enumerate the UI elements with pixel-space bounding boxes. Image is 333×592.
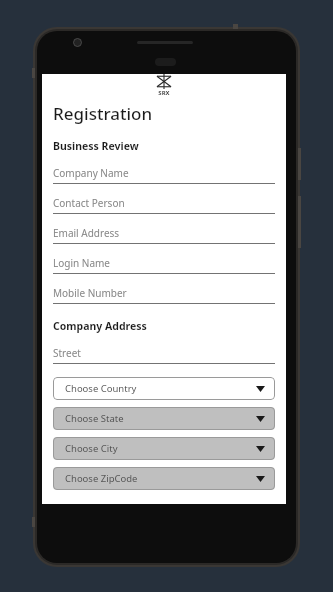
- staticText: Contact Person: [53, 196, 125, 210]
- staticText: Choose State: [65, 412, 256, 425]
- staticText: Street: [53, 346, 81, 360]
- button[interactable]: Choose City: [53, 437, 275, 460]
- staticText: Company Address: [53, 319, 147, 333]
- staticText: Login Name: [53, 256, 110, 270]
- button[interactable]: Street: [53, 342, 275, 372]
- staticText: Mobile Number: [53, 286, 127, 300]
- staticText: Business Review: [53, 139, 139, 153]
- staticText: Choose Country: [65, 382, 256, 395]
- button[interactable]: Company Name: [53, 162, 275, 192]
- button[interactable]: Login Name: [53, 252, 275, 282]
- button[interactable]: Email Address: [53, 222, 275, 252]
- button[interactable]: Choose Country: [53, 377, 275, 400]
- staticText: Choose ZipCode: [65, 472, 256, 485]
- staticText: SRX: [158, 89, 170, 97]
- staticText: Choose City: [65, 442, 256, 455]
- button[interactable]: Mobile Number: [53, 282, 275, 312]
- staticText: Company Name: [53, 166, 129, 180]
- staticText: Registration: [53, 102, 153, 125]
- staticText: Email Address: [53, 226, 120, 240]
- button[interactable]: Choose ZipCode: [53, 467, 275, 490]
- button[interactable]: Choose State: [53, 407, 275, 430]
- button[interactable]: Contact Person: [53, 192, 275, 222]
